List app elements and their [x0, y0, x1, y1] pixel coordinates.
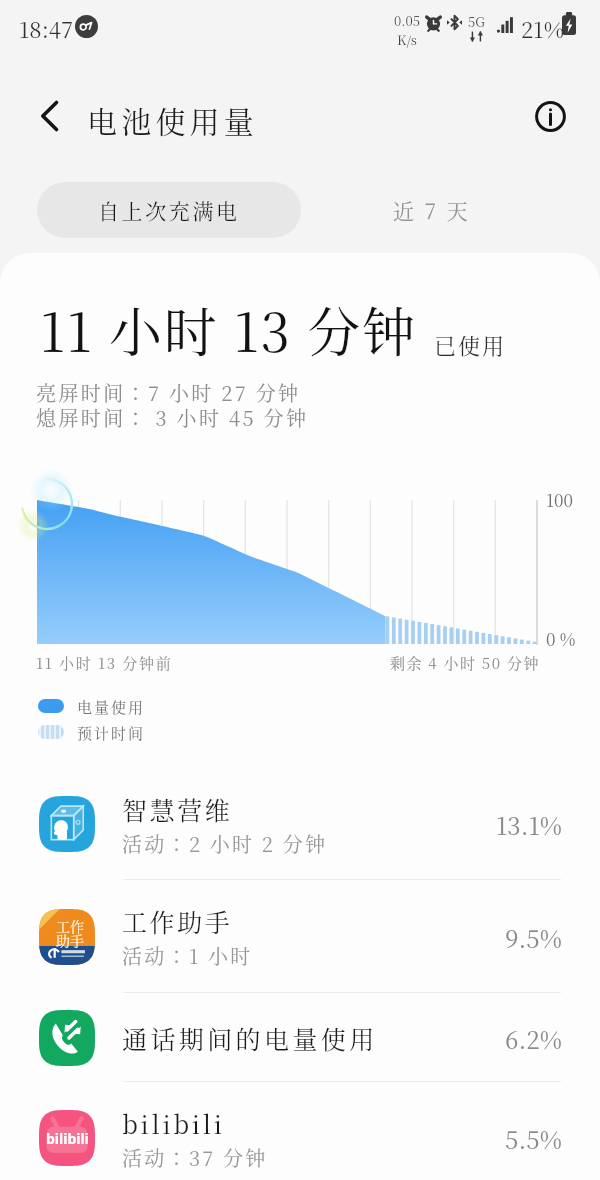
staticText: 11 小时 13 分钟前	[36, 652, 173, 674]
staticText: 已使用	[434, 329, 507, 361]
button[interactable]: 通话期间的电量使用	[0, 993, 600, 1082]
staticText: 0.05	[394, 11, 420, 30]
staticText: 9.5%	[505, 920, 562, 954]
staticText: 电池使用量	[87, 98, 258, 141]
staticText: 助手	[56, 930, 84, 950]
staticText: bilibili	[122, 1105, 225, 1141]
staticText: 智慧营维	[122, 791, 233, 827]
button[interactable]: bilibili	[0, 1082, 600, 1180]
staticText: K/s	[397, 30, 417, 49]
staticText: 13.1%	[496, 807, 562, 841]
button[interactable]: 工作	[0, 880, 600, 993]
staticText: 自上次充满电	[98, 195, 240, 225]
staticText: 近 7 天	[393, 195, 471, 225]
staticText: 5.5%	[505, 1121, 562, 1155]
button[interactable]: 自上次充满电	[37, 182, 301, 238]
button[interactable]: Back	[24, 91, 74, 141]
staticText: 11 小时 13 分钟	[40, 291, 417, 367]
staticText: 电量使用	[77, 696, 146, 718]
staticText: 通话期间的电量使用	[122, 1020, 378, 1056]
staticText: 活动：2 小时 2 分钟	[122, 829, 328, 858]
staticText: 剩余 4 小时 50 分钟	[390, 652, 540, 674]
staticText: 0 %	[546, 626, 576, 650]
staticText: 亮屏时间：7 小时 27 分钟	[36, 378, 301, 407]
button[interactable]: 智慧营维	[0, 768, 600, 880]
staticText: 工作	[56, 916, 84, 936]
staticText: bilibili	[46, 1129, 89, 1148]
staticText: 活动：37 分钟	[122, 1143, 268, 1172]
button[interactable]: 近 7 天	[301, 182, 563, 238]
staticText: 6.2%	[505, 1021, 562, 1055]
staticText: 100	[546, 487, 573, 511]
staticText: 工作助手	[122, 903, 233, 939]
staticText: 活动：1 小时	[122, 941, 253, 970]
staticText: 预计时间	[77, 722, 146, 744]
button[interactable]: Information	[525, 91, 575, 141]
staticText: 18:47	[19, 13, 74, 45]
staticText: 熄屏时间： 3 小时 45 分钟	[36, 403, 309, 432]
staticText: 5G	[468, 12, 485, 31]
staticText: 21%	[521, 13, 564, 45]
